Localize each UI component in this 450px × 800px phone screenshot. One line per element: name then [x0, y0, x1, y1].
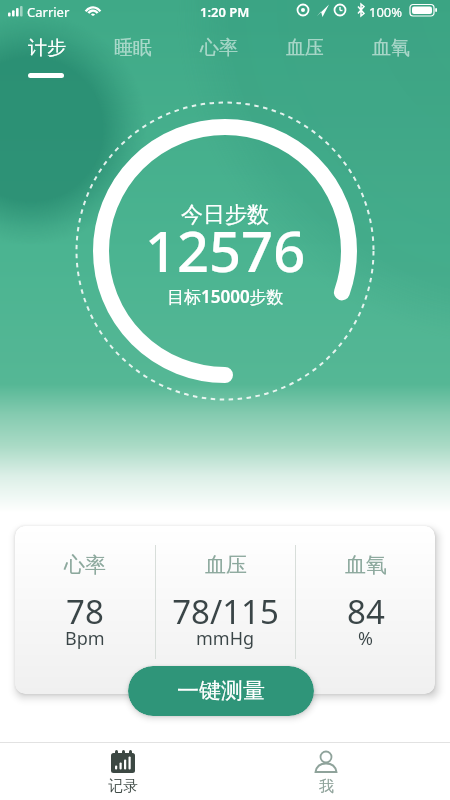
staticText: 记录 — [108, 777, 138, 796]
staticText: 12576 — [145, 212, 306, 288]
staticText: 血氧 — [372, 36, 410, 60]
staticText: 100% — [369, 3, 403, 21]
staticText: 一键测量 — [177, 677, 265, 705]
staticText: 心率 — [200, 36, 238, 60]
staticText: 血压 — [205, 552, 247, 578]
staticText: mmHg — [196, 626, 255, 651]
staticText: 1:20 PM — [200, 3, 250, 21]
staticText: Carrier — [27, 3, 70, 21]
staticText: 84 — [347, 589, 385, 634]
staticText: 心率 — [64, 552, 106, 578]
staticText: Bpm — [65, 626, 105, 651]
staticText: 78 — [66, 589, 104, 634]
staticText: 78/115 — [172, 589, 279, 634]
staticText: 我 — [319, 777, 334, 796]
staticText: 血压 — [286, 36, 324, 60]
staticText: 睡眠 — [114, 36, 152, 60]
staticText: 计步 — [28, 36, 66, 60]
staticText: 目标15000步数 — [167, 285, 284, 308]
staticText: 血氧 — [345, 552, 387, 578]
staticText: 今日步数 — [181, 201, 269, 229]
staticText: % — [358, 626, 373, 651]
